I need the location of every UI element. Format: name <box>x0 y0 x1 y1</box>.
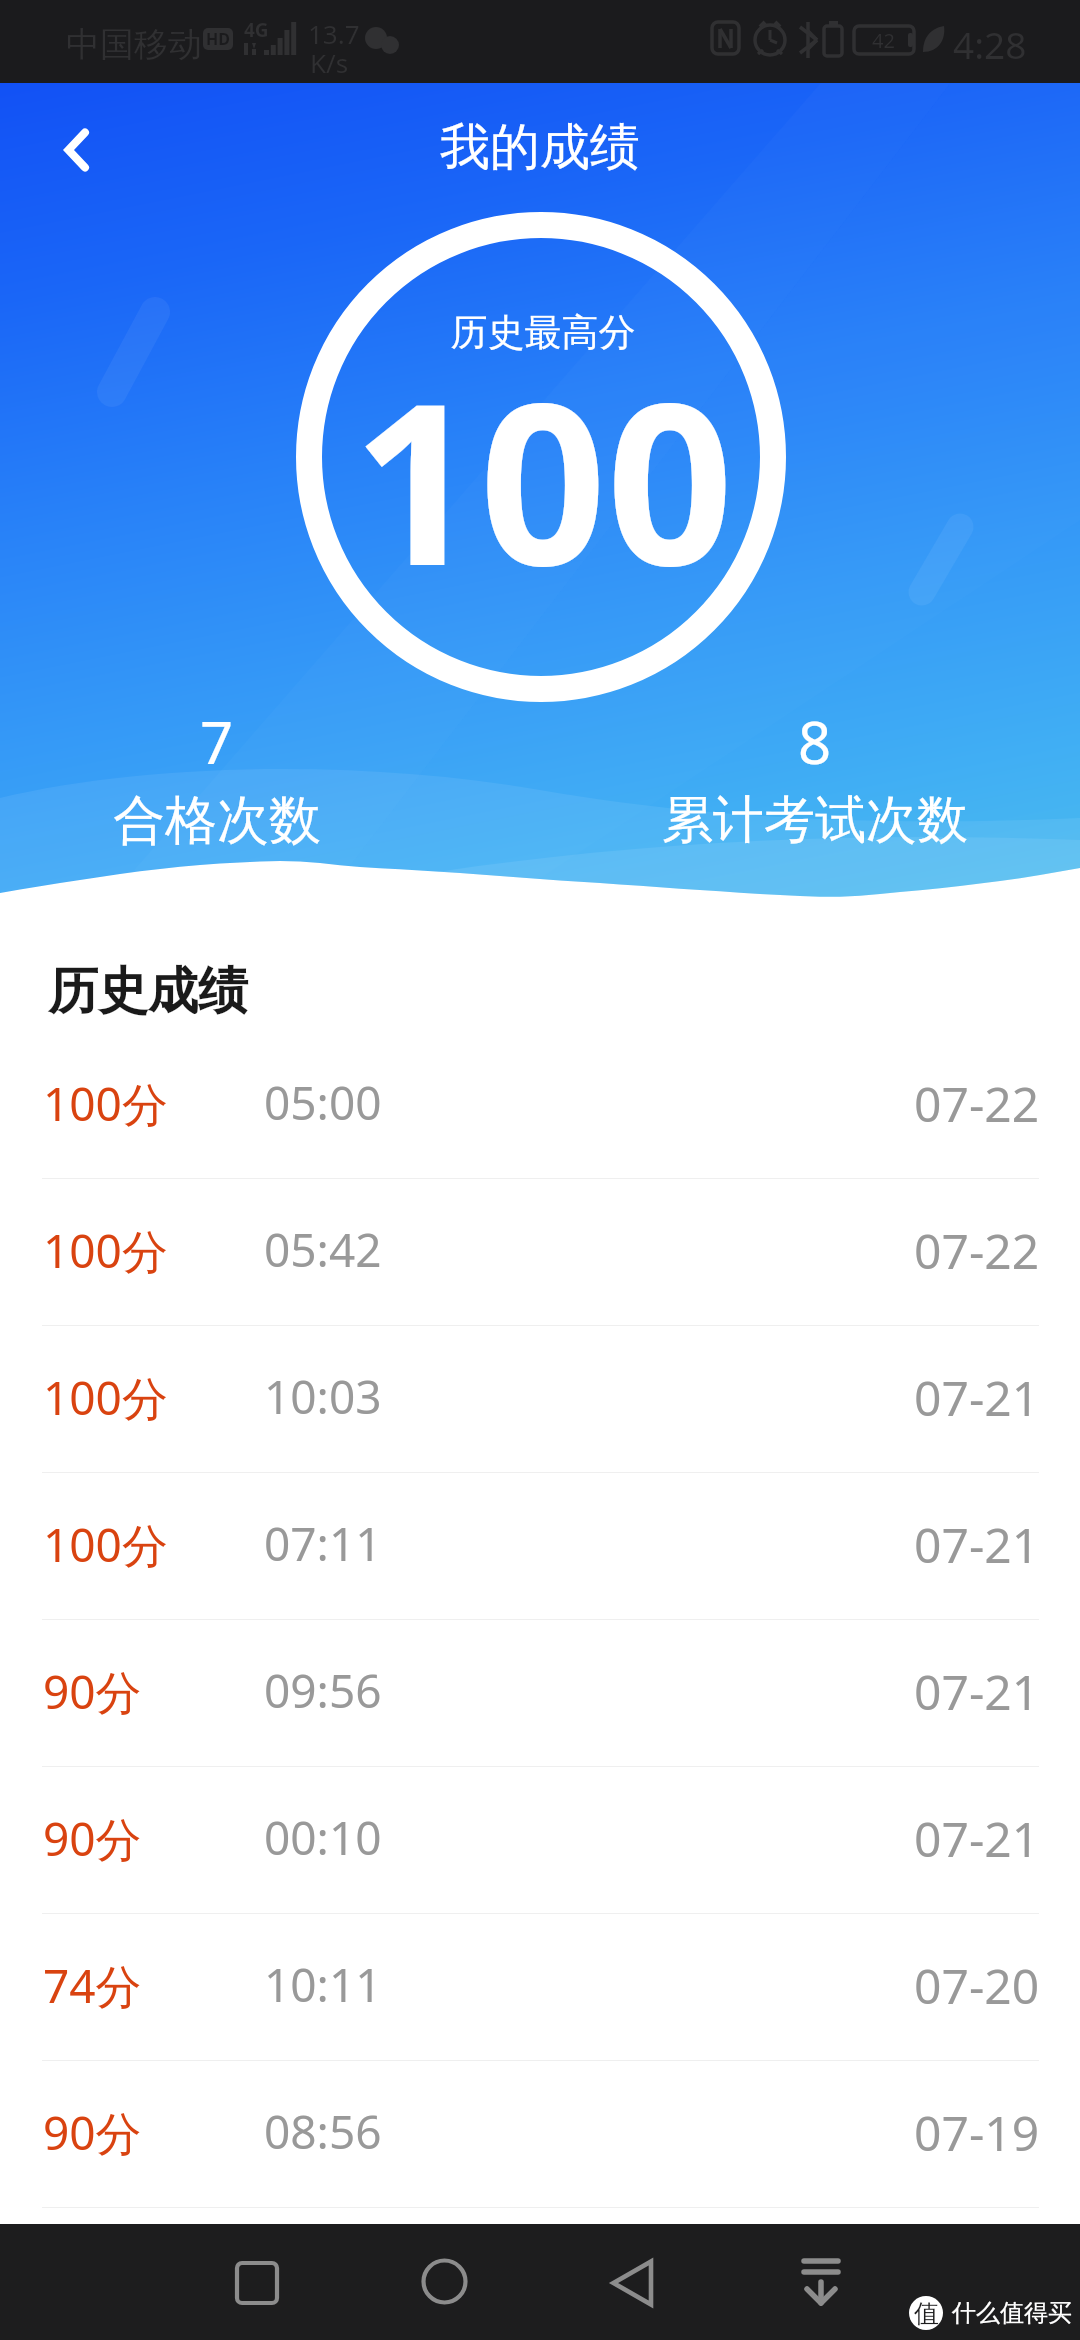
staticText: 07-21 <box>914 1806 1040 1871</box>
button[interactable]: 100分 <box>0 1326 1080 1472</box>
staticText: 历史成绩 <box>48 960 248 1023</box>
staticText: 13.7 <box>308 16 360 51</box>
staticText: 07-20 <box>914 1953 1040 2018</box>
button[interactable]: Recent apps <box>216 2242 296 2322</box>
staticText: 10:11 <box>264 1953 382 2016</box>
staticText: 07-21 <box>914 1512 1040 1577</box>
staticText: 100分 <box>43 1513 168 1576</box>
staticText: 4:28 <box>953 19 1027 69</box>
button[interactable]: 90分 <box>0 2061 1080 2207</box>
button[interactable]: Back <box>592 2240 672 2320</box>
staticText: 中国移动 <box>66 23 202 66</box>
button[interactable]: 100分 <box>0 1473 1080 1619</box>
staticText: 74分 <box>43 1954 142 2017</box>
staticText: 07-22 <box>914 1071 1040 1136</box>
staticText: 4G <box>244 17 269 43</box>
staticText: HD <box>206 28 230 50</box>
staticText: 42 <box>872 27 895 54</box>
staticText: 07-21 <box>914 1365 1040 1430</box>
staticText: 值 <box>914 2298 939 2329</box>
staticText: K/s <box>310 45 349 80</box>
staticText: 什么值得买 <box>952 2298 1072 2328</box>
staticText: 90分 <box>43 2101 142 2164</box>
staticText: 05:00 <box>264 1071 382 1134</box>
staticText: 07:11 <box>264 1512 382 1575</box>
staticText: 100分 <box>43 1366 168 1429</box>
button[interactable]: Hide navigation bar <box>781 2240 861 2320</box>
button[interactable]: 74分 <box>0 1914 1080 2060</box>
staticText: 90分 <box>43 1807 142 1870</box>
staticText: 10:03 <box>264 1365 382 1428</box>
staticText: 05:42 <box>264 1218 382 1281</box>
staticText: 08:56 <box>264 2100 382 2163</box>
staticText: 07-19 <box>914 2100 1040 2165</box>
staticText: 8 <box>798 702 832 781</box>
button[interactable]: 100分 <box>0 1032 1080 1178</box>
staticText: 累计考试次数 <box>662 788 968 852</box>
button[interactable]: 90分 <box>0 1620 1080 1766</box>
staticText: 我的成绩 <box>0 116 1080 179</box>
staticText: 90分 <box>43 1660 142 1723</box>
staticText: 07-21 <box>914 1659 1040 1724</box>
button[interactable]: Home <box>405 2240 485 2320</box>
button[interactable]: 100分 <box>0 1179 1080 1325</box>
staticText: 历史最高分 <box>3 309 1080 356</box>
staticText: 合格次数 <box>113 788 321 854</box>
staticText: 00:10 <box>264 1806 382 1869</box>
button[interactable]: 90分 <box>0 1767 1080 1913</box>
staticText: 100分 <box>43 1219 168 1282</box>
staticText: 09:56 <box>264 1659 382 1722</box>
button[interactable]: Back <box>25 100 125 200</box>
staticText: 100 <box>3 328 1080 630</box>
staticText: 100分 <box>43 1072 168 1135</box>
staticText: 07-22 <box>914 1218 1040 1283</box>
staticText: 7 <box>200 702 234 781</box>
